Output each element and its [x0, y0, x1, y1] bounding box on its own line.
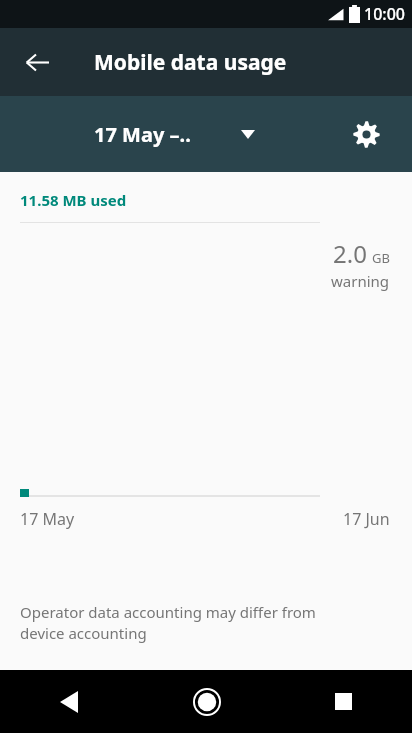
staticText: 17 May: [20, 508, 75, 530]
staticText: 11.58 MB used: [20, 190, 127, 210]
button[interactable]: 17 May –..: [86, 109, 269, 160]
button[interactable]: Recent apps: [275, 670, 412, 733]
staticText: Operator data accounting may differ from…: [20, 602, 316, 644]
staticText: 10:00: [364, 3, 405, 25]
staticText: GB: [372, 249, 390, 267]
staticText: 2.0: [333, 237, 367, 270]
button[interactable]: Back: [0, 670, 138, 733]
staticText: 17 May –..: [94, 121, 191, 148]
staticText: 17 Jun: [343, 508, 390, 530]
staticText: warning: [331, 271, 390, 291]
button[interactable]: Settings: [342, 110, 390, 158]
staticText: Mobile data usage: [94, 48, 287, 77]
button[interactable]: Navigate up: [12, 37, 62, 87]
button[interactable]: Home: [138, 670, 275, 733]
